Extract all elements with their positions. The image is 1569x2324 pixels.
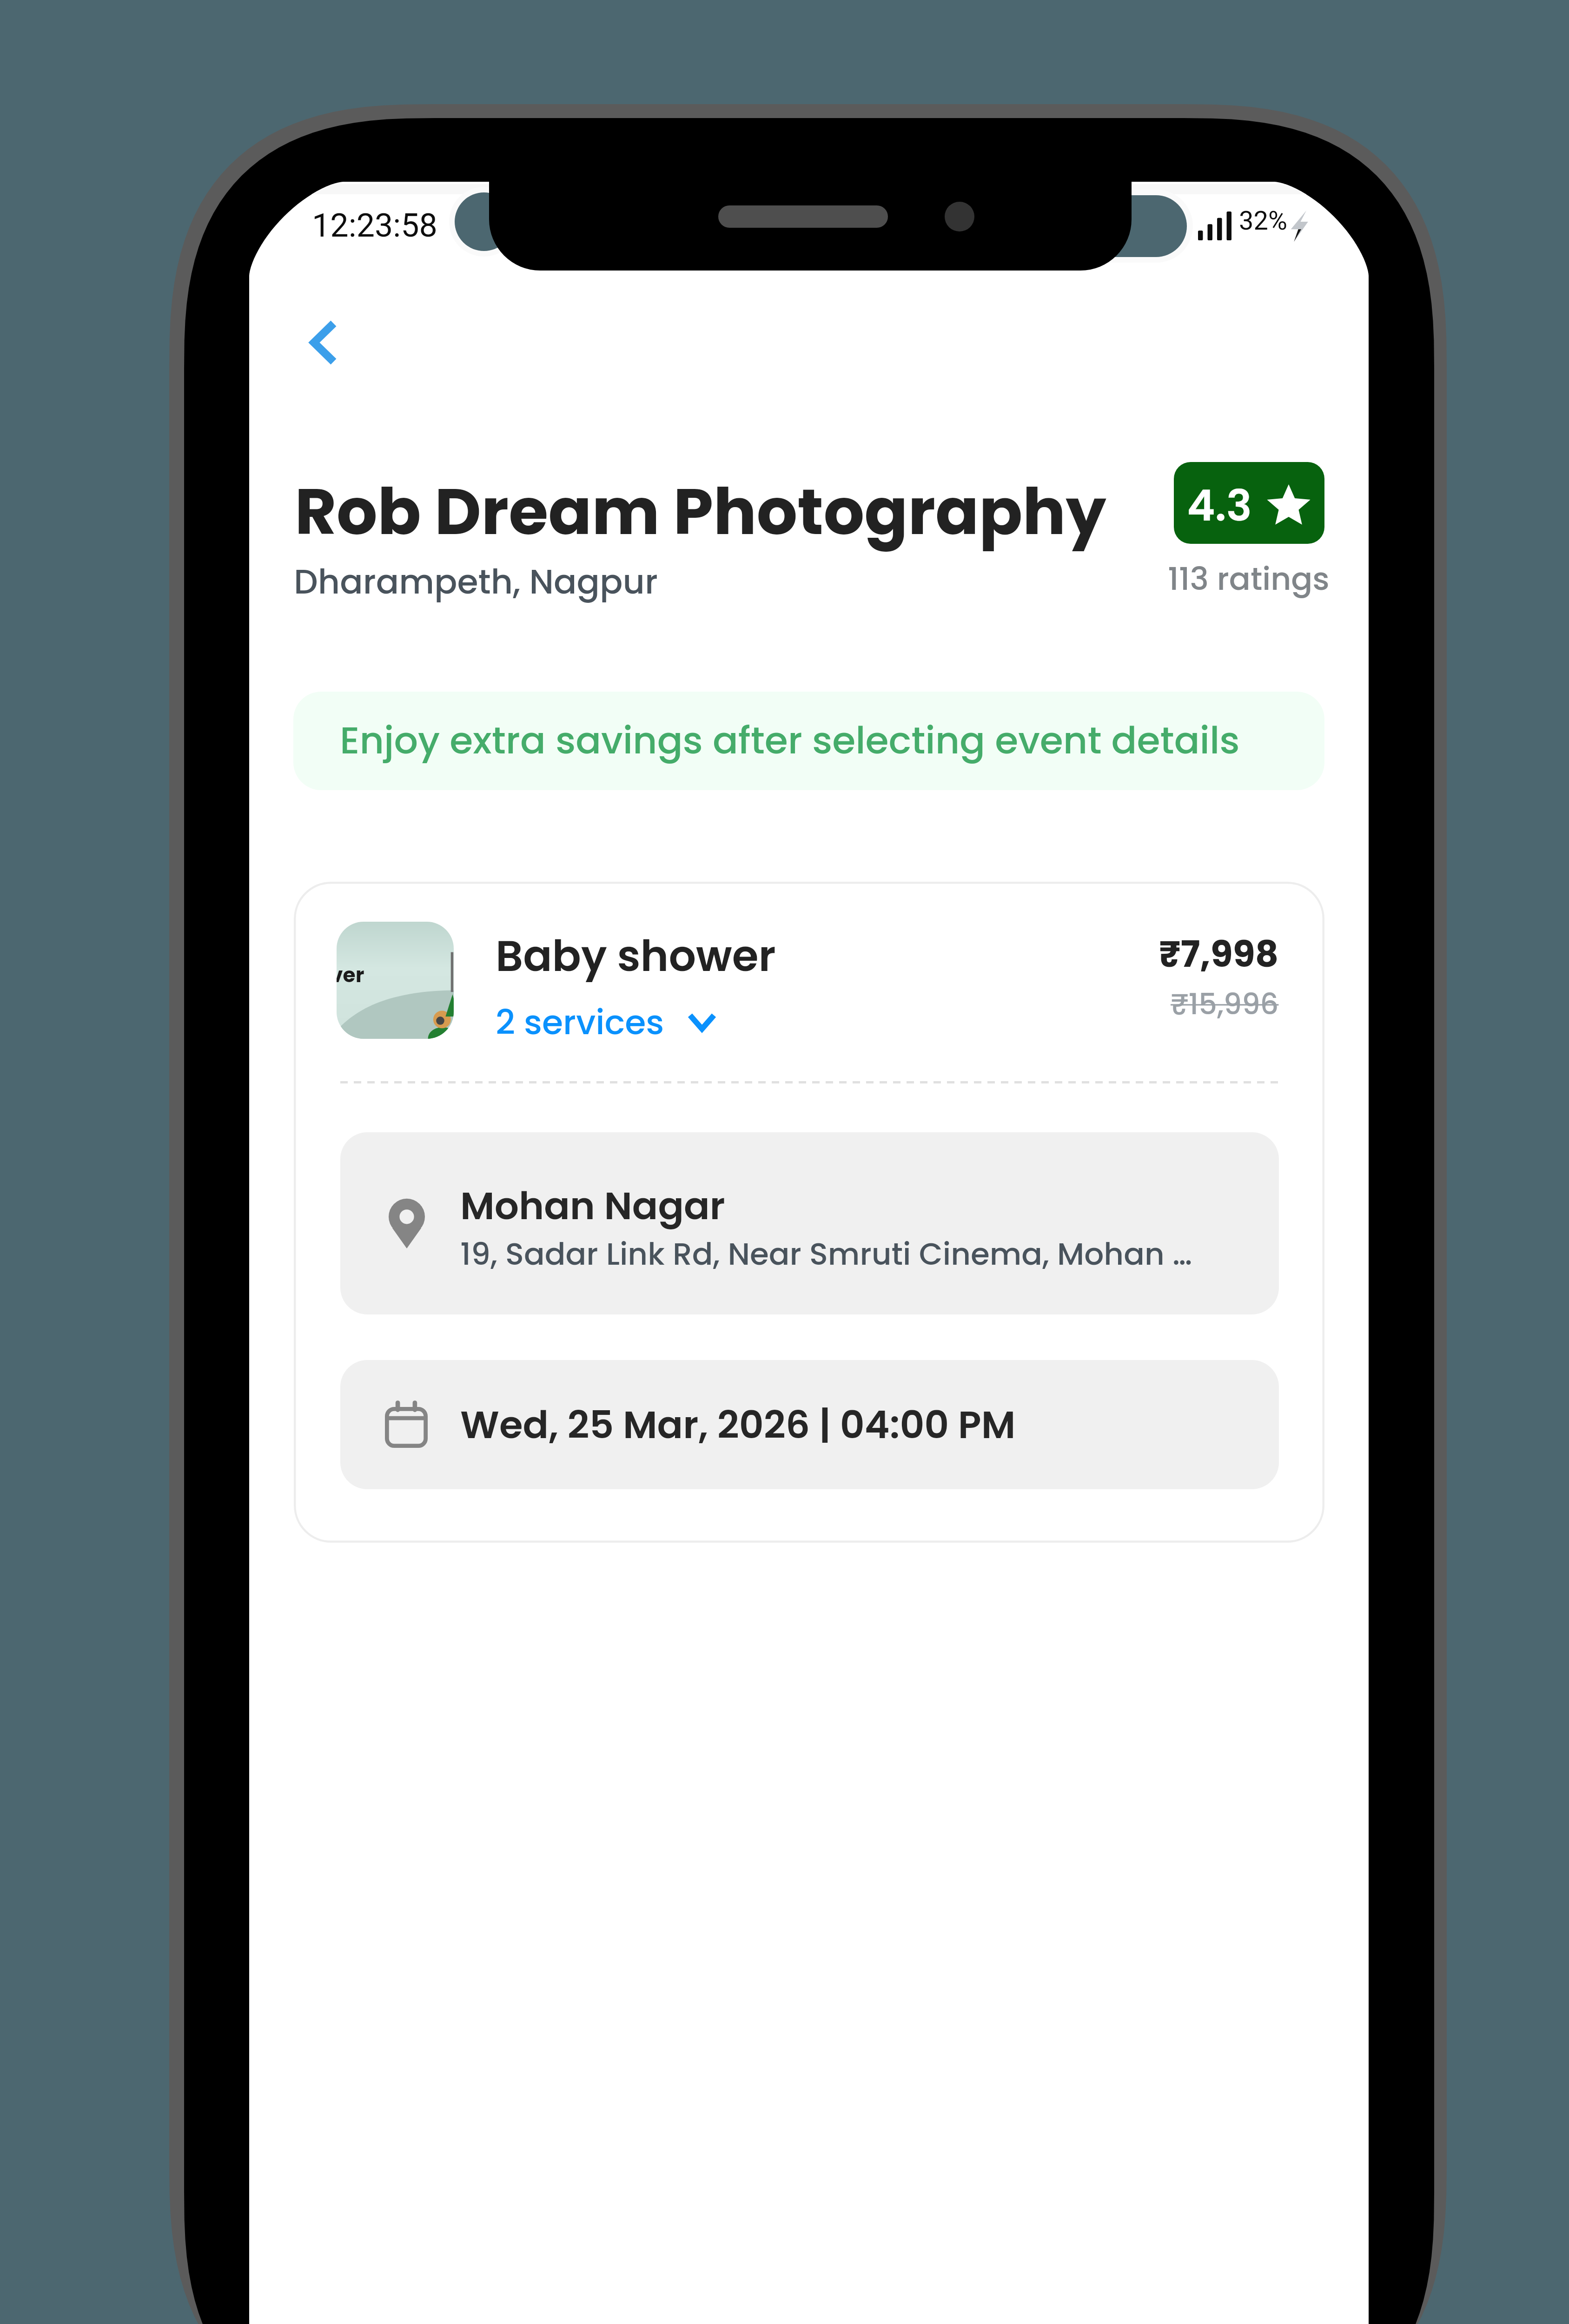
button[interactable]: Wed, 25 Mar, 2026 | 04:00 PM — [340, 1360, 1279, 1489]
staticText: 19, Sadar Link Rd, Near Smruti Cinema, M… — [460, 1233, 1192, 1275]
staticText: Baby shower — [496, 926, 776, 986]
staticText: 12:23:58 — [312, 206, 437, 244]
staticText: Rob Dream Photography — [295, 467, 1106, 556]
staticText: 113 ratings — [1168, 557, 1330, 601]
staticText: 32% — [1239, 205, 1287, 236]
button[interactable]: Back — [286, 305, 361, 380]
staticText: Dharampeth, Nagpur — [294, 558, 658, 605]
staticText: Mohan Nagar — [460, 1179, 725, 1233]
staticText: 2 services — [496, 998, 664, 1046]
staticText: ver — [337, 961, 364, 990]
staticText: ₹15,996 — [1171, 984, 1279, 1024]
staticText: ₹7,998 — [1159, 929, 1279, 979]
staticText: Wed, 25 Mar, 2026 | 04:00 PM — [460, 1398, 1016, 1452]
staticText: Enjoy extra savings after selecting even… — [340, 714, 1240, 766]
staticText: 4.3 — [1187, 475, 1252, 535]
button[interactable]: Mohan Nagar — [340, 1132, 1279, 1314]
button[interactable]: 2 services — [496, 998, 716, 1046]
button[interactable]: Enjoy extra savings after selecting even… — [293, 692, 1324, 790]
button[interactable]: 4.3 — [1174, 462, 1324, 544]
